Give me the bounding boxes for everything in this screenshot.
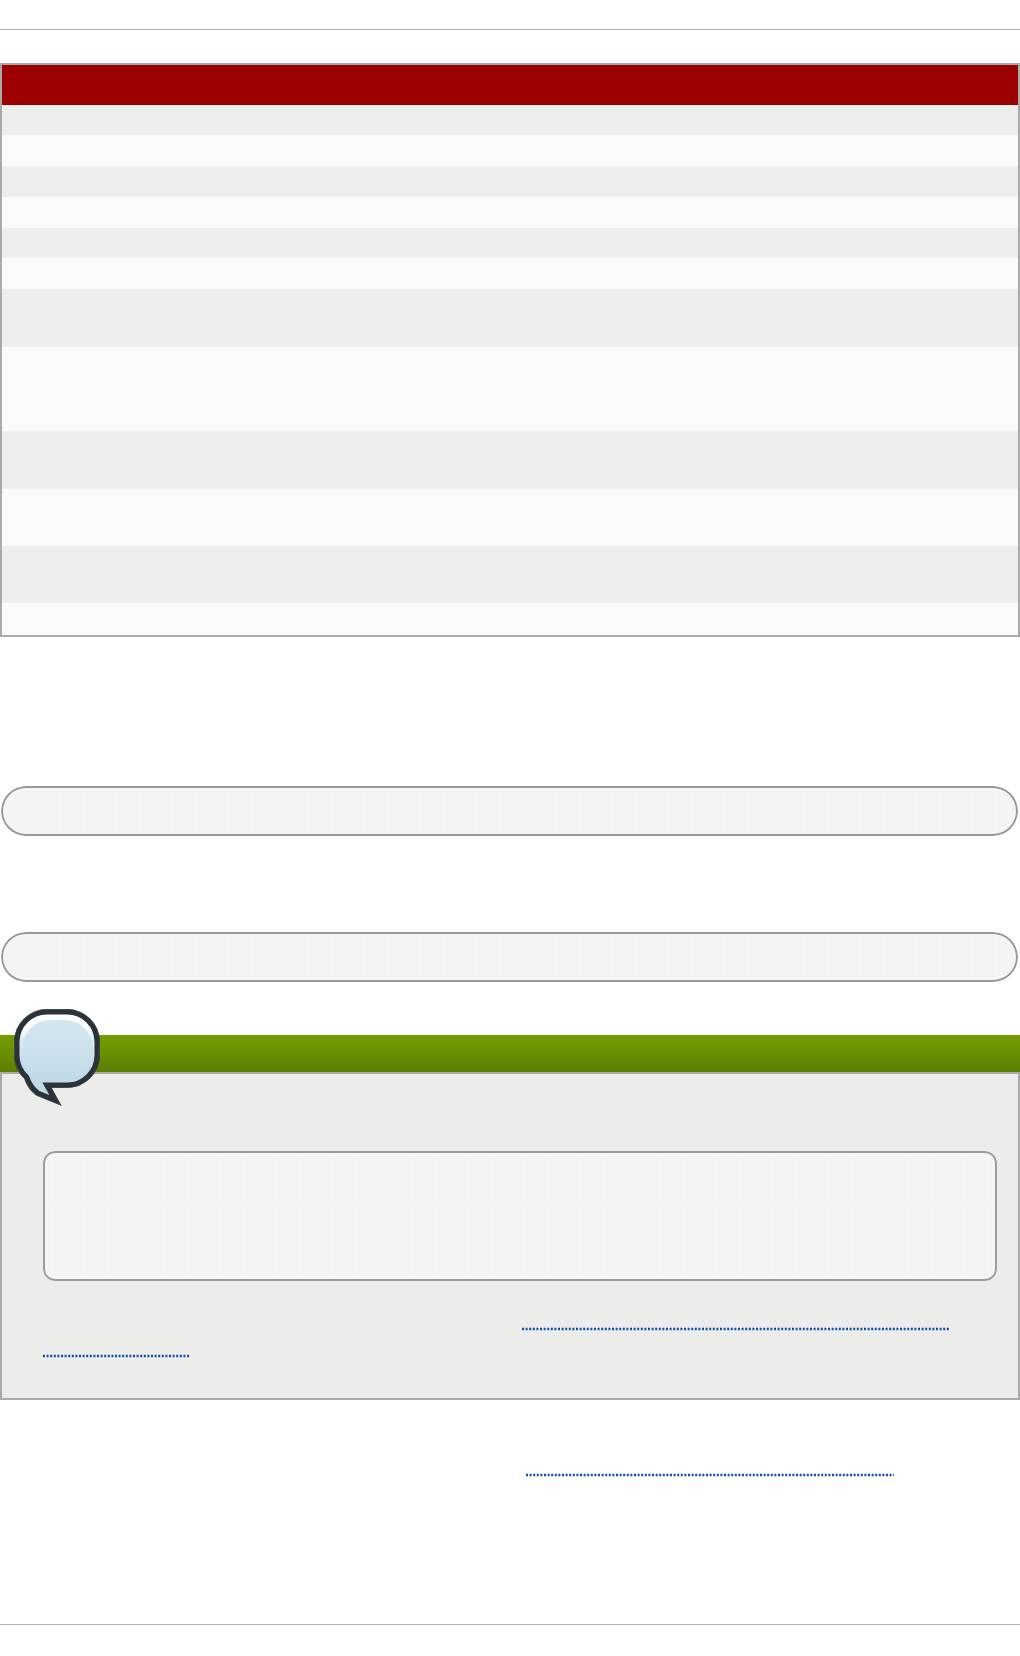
- button[interactable]: More information: [526, 1468, 894, 1482]
- button[interactable]: Filter: [1, 932, 1018, 982]
- button[interactable]: Reply: [43, 1349, 189, 1363]
- button[interactable]: Open link: [522, 1322, 949, 1336]
- button[interactable]: Search: [1, 786, 1018, 836]
- button[interactable]: Comment: [14, 1009, 102, 1107]
